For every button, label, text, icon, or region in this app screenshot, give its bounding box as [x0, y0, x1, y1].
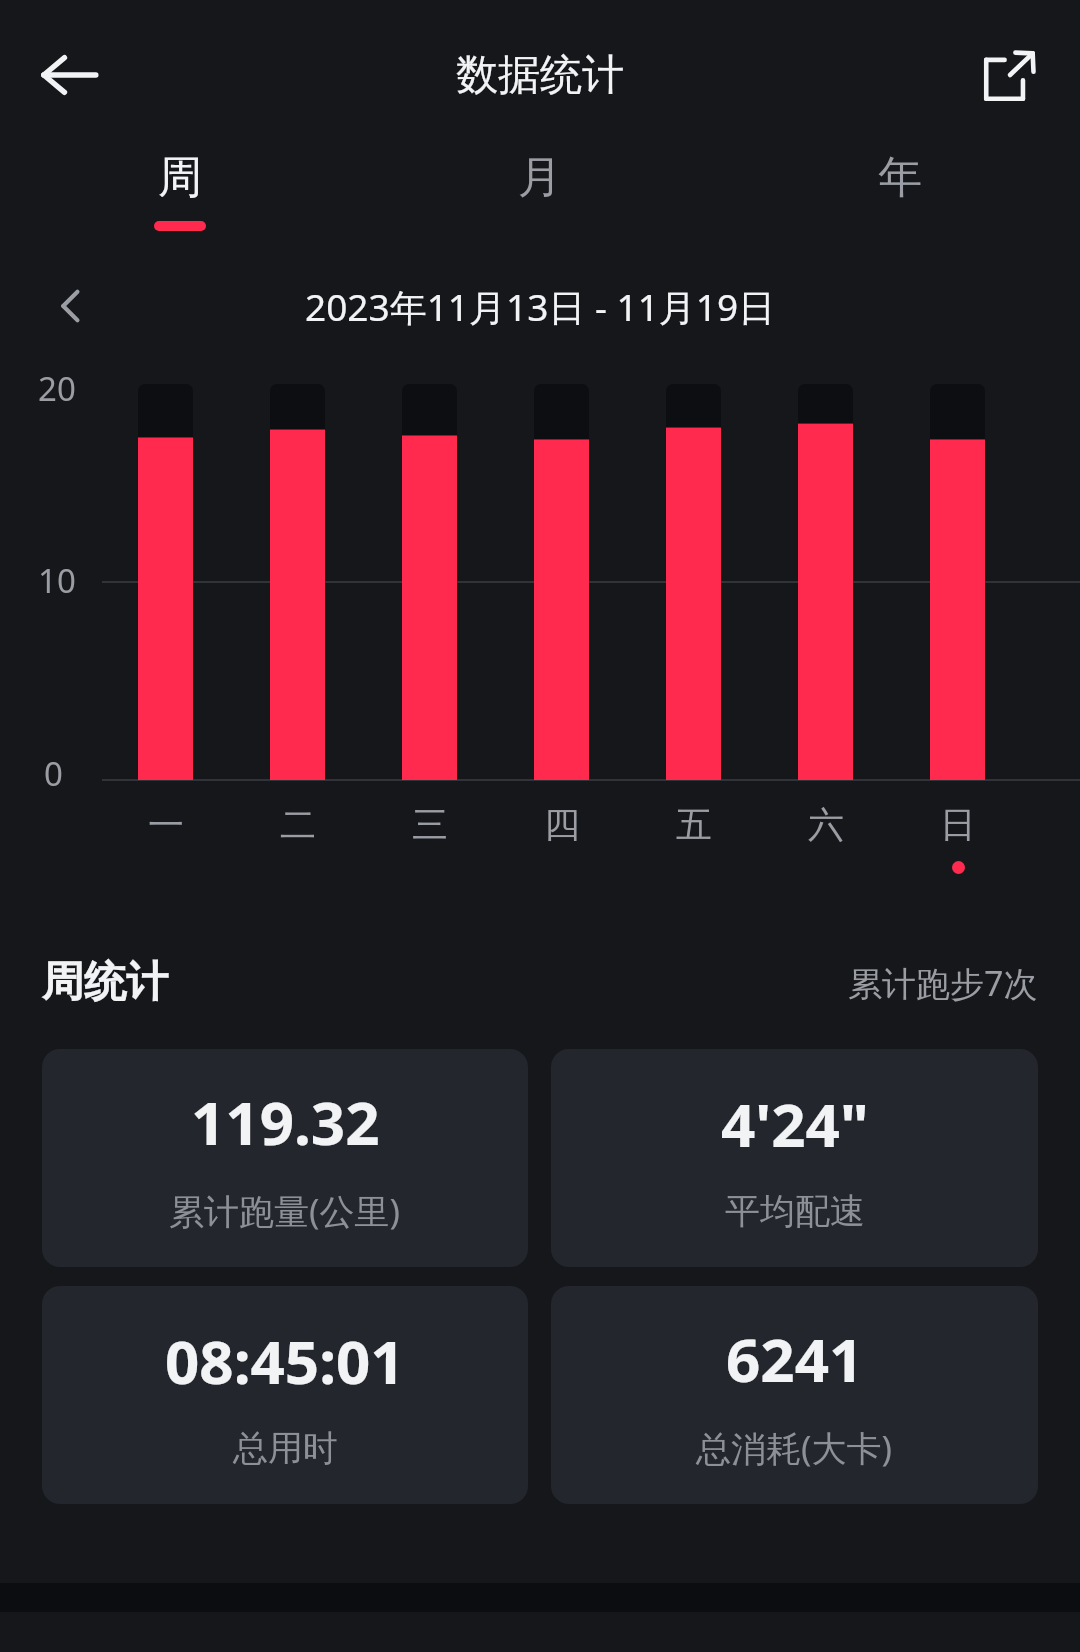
staticText: 总用时 [233, 1426, 338, 1470]
staticText: 二 [280, 802, 316, 847]
staticText: 日 [940, 802, 976, 847]
staticText: 2023年11月13日 - 11月19日 [305, 281, 776, 332]
staticText: 月 [518, 150, 562, 205]
staticText: 6241 [726, 1318, 864, 1400]
staticText: 周统计 [42, 956, 168, 1009]
staticText: 平均配速 [725, 1189, 865, 1233]
button[interactable]: 6241 [551, 1286, 1038, 1504]
staticText: 4'24" [721, 1083, 869, 1165]
staticText: 四 [544, 802, 580, 847]
staticText: 一 [148, 802, 184, 847]
button[interactable]: 周 [0, 150, 360, 231]
staticText: 119.32 [191, 1081, 380, 1163]
staticText: 六 [808, 802, 844, 847]
button[interactable]: Share [966, 31, 1054, 119]
staticText: 10 [38, 558, 76, 603]
staticText: 20 [38, 366, 76, 411]
staticText: 年 [878, 150, 922, 205]
staticText: 周 [158, 150, 202, 205]
staticText: 累计跑量(公里) [169, 1187, 401, 1235]
button[interactable]: 08:45:01 [42, 1286, 528, 1504]
staticText: 总消耗(大卡) [696, 1424, 893, 1472]
staticText: 0 [44, 751, 63, 796]
button[interactable]: 119.32 [42, 1049, 528, 1267]
button[interactable]: 年 [720, 150, 1080, 231]
button[interactable]: 月 [360, 150, 720, 231]
staticText: 三 [412, 802, 448, 847]
staticText: 08:45:01 [165, 1320, 405, 1402]
staticText: 五 [676, 802, 712, 847]
staticText: 数据统计 [456, 49, 624, 102]
button[interactable]: Previous week [32, 268, 108, 344]
button[interactable]: Back [24, 30, 114, 120]
staticText: 累计跑步7次 [848, 960, 1038, 1006]
button[interactable]: 4'24" [551, 1049, 1038, 1267]
